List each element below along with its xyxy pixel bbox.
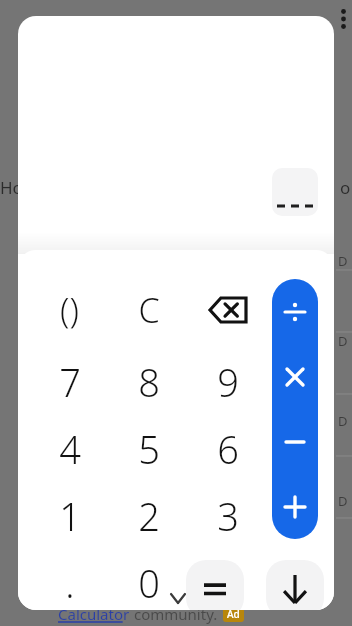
- staticText: 0: [138, 557, 160, 609]
- button[interactable]: 1: [30, 484, 109, 548]
- button[interactable]: Multiply: [272, 344, 318, 409]
- button[interactable]: 2: [109, 484, 188, 548]
- button[interactable]: Equals: [186, 560, 244, 610]
- staticText: 8: [138, 356, 160, 408]
- button[interactable]: Down: [266, 560, 324, 610]
- staticText: D: [338, 412, 348, 430]
- button[interactable]: 8: [109, 350, 188, 414]
- staticText: 1: [59, 490, 81, 542]
- staticText: 5: [138, 423, 160, 475]
- staticText: Ad: [227, 607, 240, 621]
- staticText: D: [338, 252, 348, 270]
- button[interactable]: C: [109, 279, 188, 341]
- button[interactable]: 3: [188, 484, 267, 548]
- button[interactable]: 7: [30, 350, 109, 414]
- button[interactable]: 5: [109, 417, 188, 481]
- button[interactable]: 6: [188, 417, 267, 481]
- button[interactable]: Minus: [272, 409, 318, 474]
- staticText: 7: [59, 356, 81, 408]
- staticText: .: [65, 557, 75, 609]
- staticText: 4: [59, 423, 81, 475]
- staticText: community.: [134, 604, 218, 624]
- button[interactable]: (): [30, 279, 109, 341]
- staticText: Ho: [0, 176, 23, 199]
- button[interactable]: 9: [188, 350, 267, 414]
- button[interactable]: Divide: [272, 279, 318, 344]
- staticText: 6: [217, 423, 239, 475]
- staticText: C: [138, 287, 160, 333]
- staticText: (): [60, 287, 79, 333]
- button[interactable]: .: [30, 551, 109, 610]
- staticText: D: [338, 332, 348, 350]
- staticText: 3: [217, 490, 239, 542]
- button[interactable]: Expand: [164, 586, 192, 610]
- staticText: 9: [217, 356, 239, 408]
- button[interactable]: 0: [109, 551, 188, 610]
- button[interactable]: Plus: [272, 474, 318, 539]
- staticText: o: [340, 176, 351, 199]
- button[interactable]: Backspace: [188, 279, 267, 341]
- staticText: Calculator: [58, 604, 130, 624]
- button[interactable]: More options: [335, 4, 352, 34]
- staticText: D: [338, 492, 348, 510]
- button[interactable]: 4: [30, 417, 109, 481]
- button[interactable]: Result placeholder: [272, 168, 318, 216]
- staticText: 2: [138, 490, 160, 542]
